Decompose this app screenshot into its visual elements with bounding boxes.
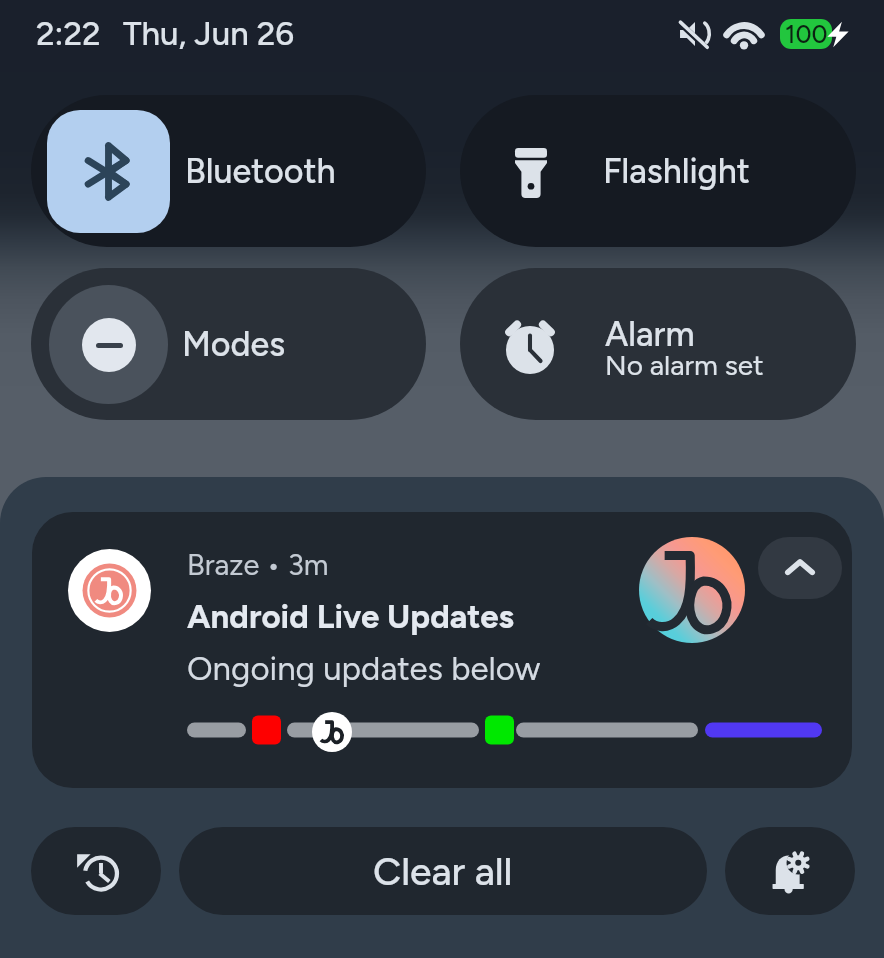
staticText: Bluetooth [185, 151, 336, 192]
staticText: 100 [785, 19, 828, 49]
staticText: Braze • 3m [187, 547, 329, 582]
button[interactable]: Collapse notification [758, 537, 842, 599]
button[interactable]: Clear all [179, 827, 707, 915]
button[interactable]: Braze • 3m [32, 512, 852, 788]
staticText: Ongoing updates below [187, 649, 541, 689]
button[interactable]: Notification history [31, 827, 161, 915]
button[interactable]: Bluetooth [31, 95, 426, 247]
button[interactable]: Modes [31, 268, 426, 420]
button[interactable]: Flashlight [460, 95, 856, 247]
staticText: Alarm [605, 314, 695, 355]
staticText: No alarm set [605, 348, 764, 382]
button[interactable]: Notification settings [725, 827, 855, 915]
button[interactable]: Alarm [460, 268, 856, 420]
staticText: Modes [182, 324, 286, 365]
staticText: Android Live Updates [187, 597, 514, 637]
staticText: Clear all [373, 848, 513, 895]
staticText: Flashlight [603, 151, 750, 192]
staticText: Thu, Jun 26 [123, 14, 295, 54]
staticText: 2:22 [36, 14, 101, 54]
